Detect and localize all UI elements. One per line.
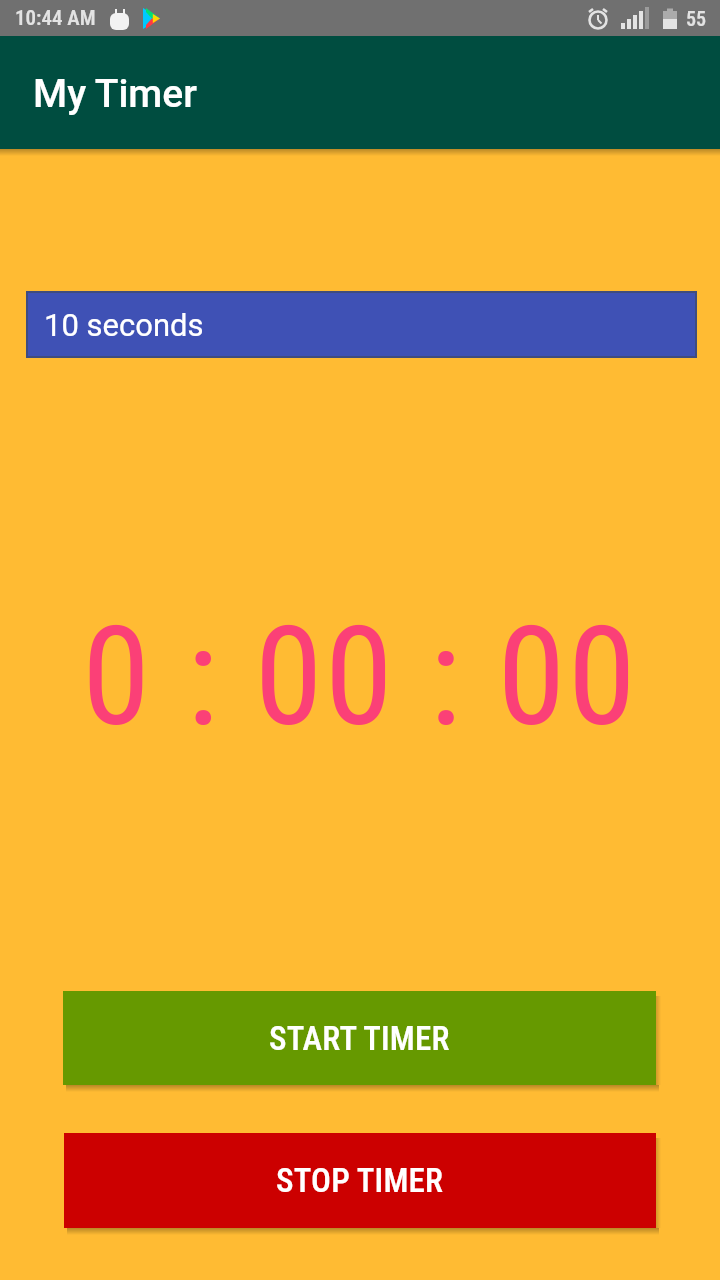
staticText: 10:44 AM [15,6,96,31]
button[interactable]: 10 seconds [26,291,697,358]
button[interactable]: START TIMER [63,991,656,1085]
staticText: My Timer [33,71,197,117]
button[interactable]: STOP TIMER [64,1133,656,1228]
staticText: 55 [686,7,707,30]
staticText: STOP TIMER [276,1161,444,1200]
staticText: 0 : 00 : 00 [0,596,720,758]
staticText: 10 seconds [44,307,204,343]
staticText: START TIMER [269,1019,450,1058]
